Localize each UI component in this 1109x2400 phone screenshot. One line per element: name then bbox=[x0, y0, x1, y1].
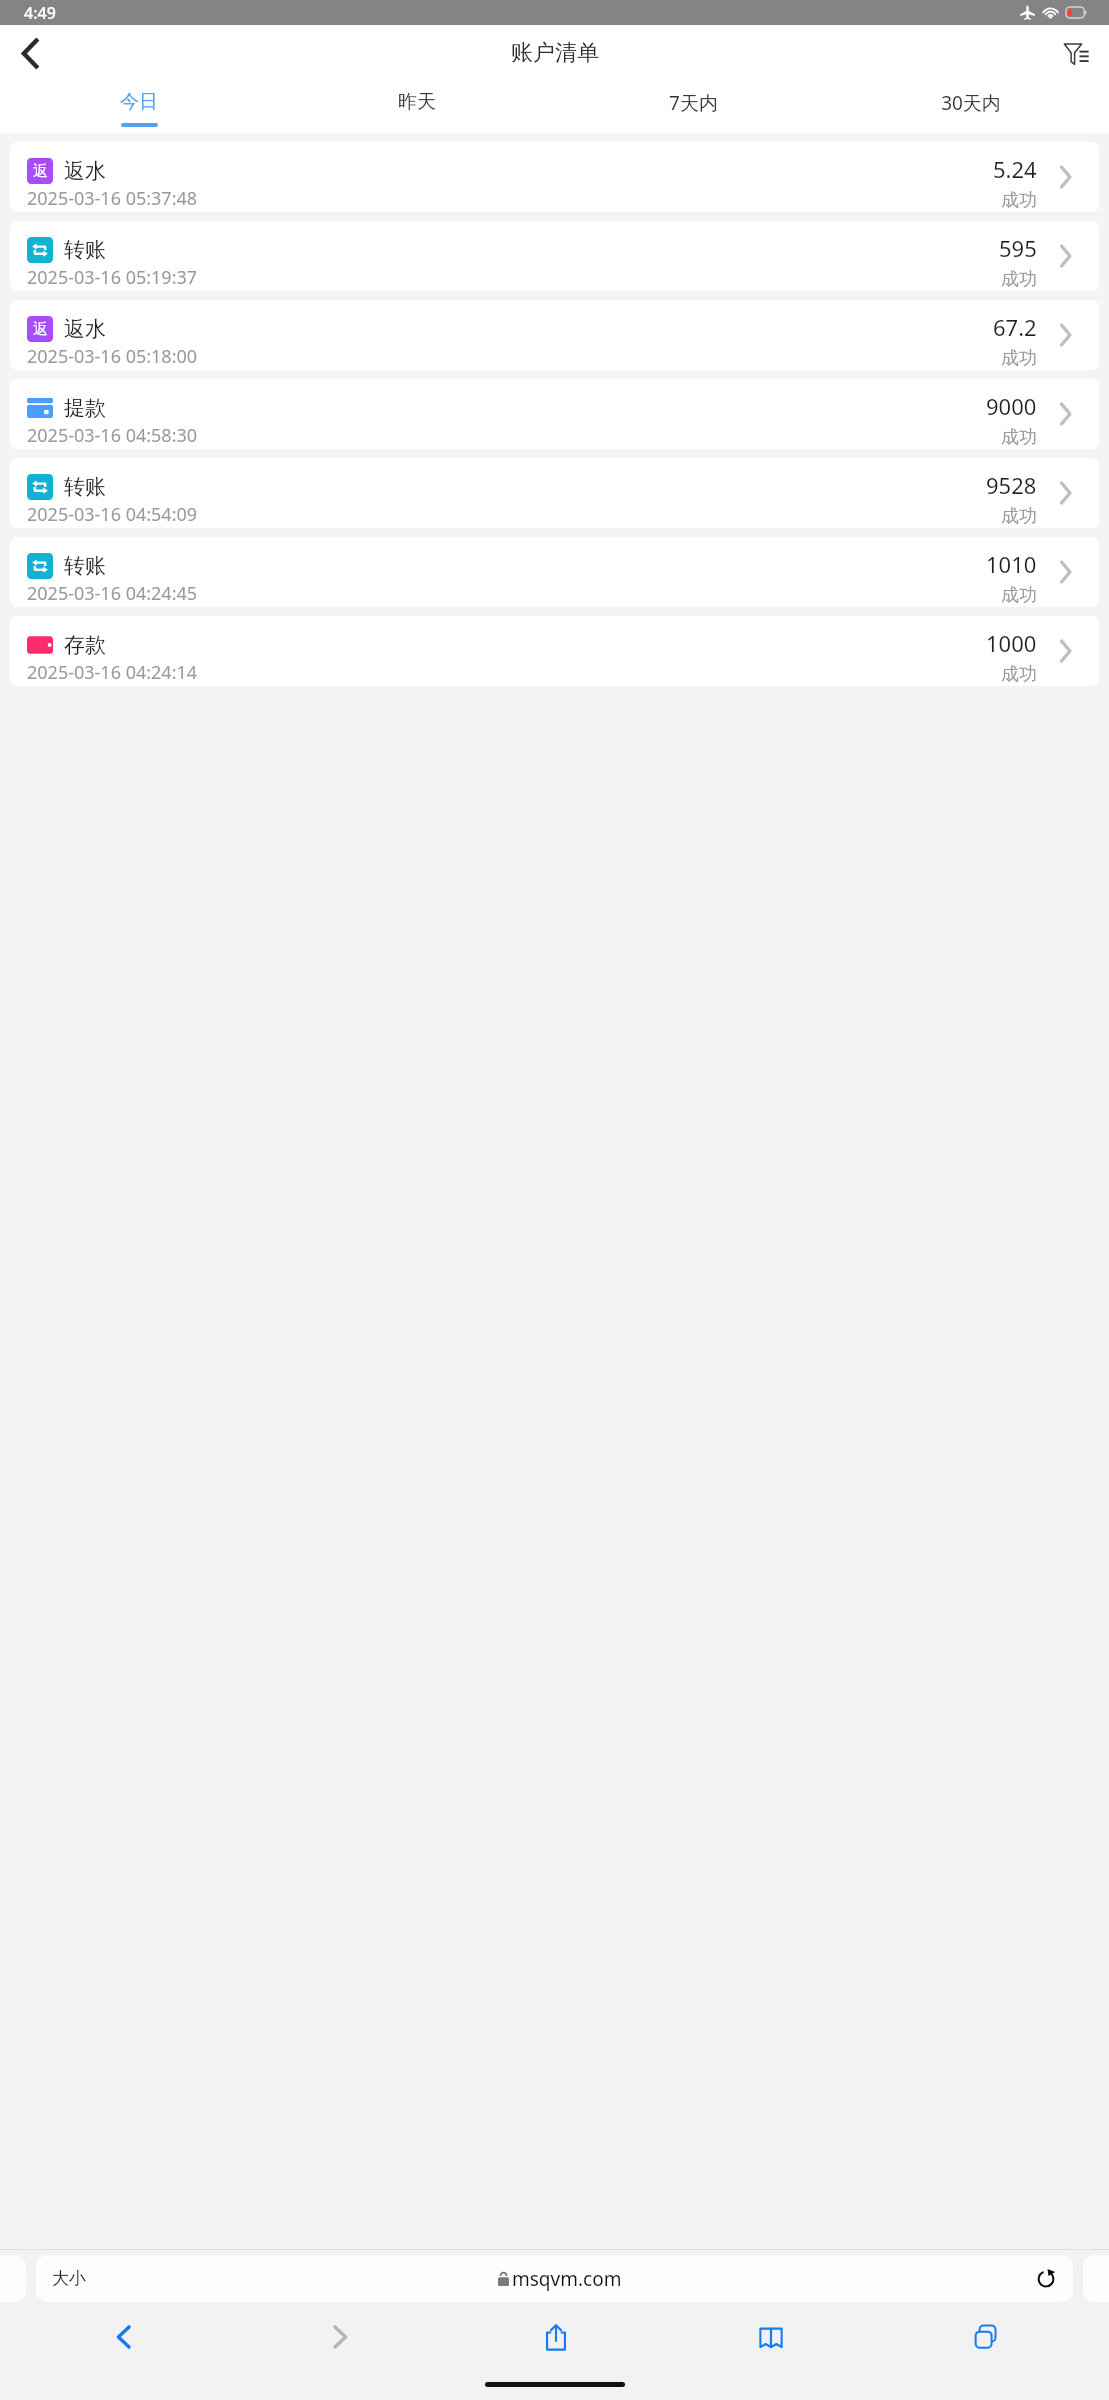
button[interactable]: 昨天 bbox=[278, 80, 555, 133]
staticText: 2025-03-16 05:19:37 bbox=[27, 265, 198, 290]
staticText: 提款 bbox=[64, 395, 106, 421]
staticText: 昨天 bbox=[398, 90, 436, 114]
staticText: 2025-03-16 04:54:09 bbox=[27, 502, 198, 527]
staticText: 67.2 bbox=[993, 312, 1037, 342]
button[interactable]: Back bbox=[16, 2306, 232, 2368]
button[interactable]: Forward bbox=[232, 2306, 448, 2368]
staticText: 9000 bbox=[986, 391, 1037, 421]
staticText: 7天内 bbox=[669, 90, 718, 116]
staticText: 成功 bbox=[1001, 268, 1037, 291]
button[interactable]: 返 bbox=[10, 300, 1099, 370]
staticText: 成功 bbox=[1001, 347, 1037, 370]
staticText: 账户清单 bbox=[511, 39, 599, 67]
staticText: 返 bbox=[33, 162, 48, 181]
staticText: 今日 bbox=[120, 90, 158, 114]
staticText: 9528 bbox=[986, 470, 1037, 500]
button[interactable]: 转账 bbox=[10, 458, 1099, 528]
staticText: 转账 bbox=[64, 237, 106, 263]
staticText: 转账 bbox=[64, 474, 106, 500]
button[interactable]: 7天内 bbox=[555, 80, 832, 133]
button[interactable]: 返 bbox=[10, 142, 1099, 212]
button[interactable]: 大小 bbox=[36, 2255, 1073, 2302]
staticText: msqvm.com bbox=[512, 2266, 622, 2292]
staticText: 转账 bbox=[64, 553, 106, 579]
staticText: 大小 bbox=[52, 2268, 86, 2289]
staticText: 成功 bbox=[1001, 584, 1037, 607]
staticText: 5.24 bbox=[993, 154, 1037, 184]
staticText: 4:49 bbox=[24, 2, 56, 24]
button[interactable]: Filter bbox=[1051, 28, 1101, 78]
button[interactable]: 转账 bbox=[10, 537, 1099, 607]
button[interactable]: Tabs bbox=[878, 2306, 1093, 2368]
button[interactable]: 30天内 bbox=[832, 80, 1109, 133]
button[interactable]: Back bbox=[6, 28, 56, 78]
staticText: 2025-03-16 05:18:00 bbox=[27, 344, 198, 369]
staticText: 30天内 bbox=[941, 90, 1001, 116]
staticText: 存款 bbox=[64, 632, 106, 658]
staticText: 返 bbox=[33, 320, 48, 339]
staticText: 返水 bbox=[64, 158, 106, 184]
button[interactable]: 今日 bbox=[0, 80, 278, 133]
staticText: 2025-03-16 04:24:45 bbox=[27, 581, 198, 606]
staticText: 2025-03-16 04:58:30 bbox=[27, 423, 198, 448]
staticText: 1000 bbox=[986, 628, 1037, 658]
staticText: 成功 bbox=[1001, 663, 1037, 686]
staticText: 1010 bbox=[986, 549, 1037, 579]
staticText: 2025-03-16 05:37:48 bbox=[27, 186, 198, 211]
button[interactable]: 提款 bbox=[10, 379, 1099, 449]
staticText: 595 bbox=[999, 233, 1037, 263]
button[interactable]: 转账 bbox=[10, 221, 1099, 291]
staticText: 成功 bbox=[1001, 426, 1037, 449]
staticText: 2025-03-16 04:24:14 bbox=[27, 660, 198, 685]
button[interactable]: 存款 bbox=[10, 616, 1099, 686]
staticText: 返水 bbox=[64, 316, 106, 342]
staticText: 成功 bbox=[1001, 189, 1037, 212]
button[interactable]: Share bbox=[448, 2306, 663, 2368]
button[interactable]: Reload bbox=[1033, 2266, 1059, 2292]
button[interactable]: Bookmarks bbox=[663, 2306, 878, 2368]
staticText: 成功 bbox=[1001, 505, 1037, 528]
